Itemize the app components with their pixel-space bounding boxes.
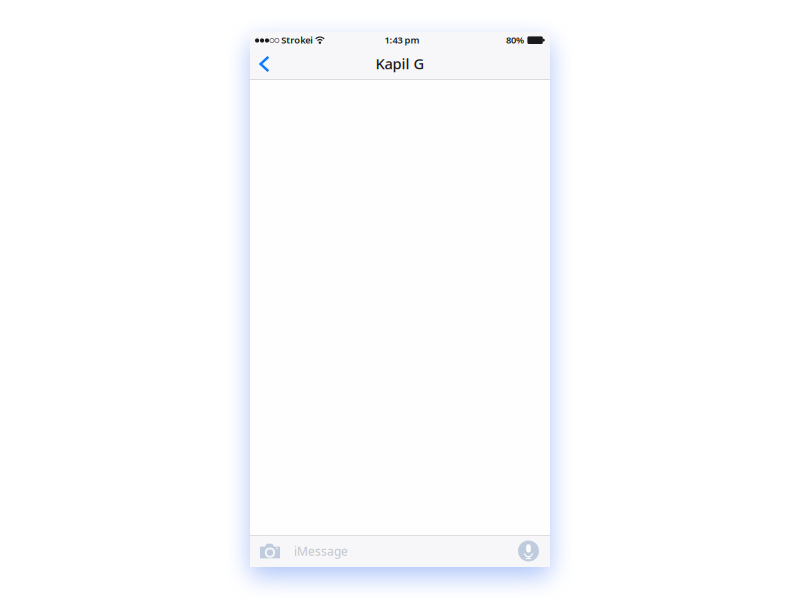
button[interactable]: Back (250, 53, 281, 79)
staticText: Kapil G (375, 54, 424, 73)
staticText: 80% (506, 34, 524, 46)
button[interactable]: Record audio message (514, 535, 545, 566)
button[interactable]: Camera (255, 537, 285, 565)
staticText: 1:43 pm (384, 34, 419, 46)
staticText: Strokei (281, 34, 313, 46)
staticText: iMessage (294, 543, 348, 559)
button[interactable]: iMessage (285, 535, 514, 567)
